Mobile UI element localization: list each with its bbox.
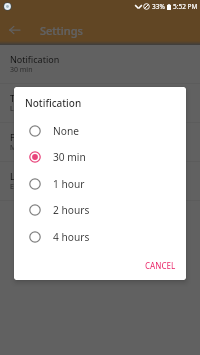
staticText: 30 min xyxy=(53,150,86,164)
button[interactable]: 4 hours xyxy=(14,223,186,250)
button[interactable]: 1 hour xyxy=(14,170,186,197)
button[interactable]: Notification xyxy=(0,45,200,83)
staticText: Theme xyxy=(10,92,40,104)
staticText: Font size xyxy=(10,131,48,143)
staticText: 1 hour xyxy=(53,177,85,191)
button[interactable]: Font size xyxy=(0,123,200,161)
button[interactable]: CANCEL xyxy=(132,253,186,278)
staticText: 4 hours xyxy=(53,230,90,244)
button[interactable]: 2 hours xyxy=(14,196,186,223)
staticText: None xyxy=(53,124,79,138)
staticText: Medium xyxy=(10,143,38,153)
button[interactable]: Language xyxy=(0,162,200,200)
staticText: Notification xyxy=(10,53,60,65)
button[interactable]: 30 min xyxy=(14,143,186,170)
staticText: Language xyxy=(10,170,53,182)
button[interactable]: None xyxy=(14,117,186,144)
staticText: Settings xyxy=(40,23,83,38)
staticText: 2 hours xyxy=(53,203,90,217)
staticText: 5:52 PM xyxy=(173,2,198,11)
staticText: Light xyxy=(10,104,27,114)
button[interactable]: Back xyxy=(4,19,25,40)
staticText: 30 min xyxy=(10,65,33,75)
staticText: Notification xyxy=(25,96,82,110)
staticText: CANCEL xyxy=(145,260,176,271)
staticText: 33% xyxy=(152,2,165,11)
staticText: English xyxy=(10,182,34,192)
button[interactable]: Theme xyxy=(0,84,200,122)
